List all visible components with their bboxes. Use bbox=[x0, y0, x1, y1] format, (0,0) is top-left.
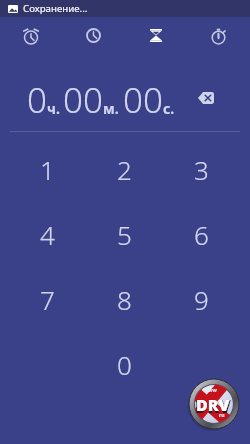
button[interactable]: 5 bbox=[86, 202, 163, 267]
button[interactable]: Backspace bbox=[194, 88, 218, 108]
button[interactable]: 0 bbox=[86, 332, 163, 397]
staticText: 6 bbox=[194, 217, 209, 252]
staticText: м. bbox=[103, 99, 119, 118]
button[interactable]: 7 bbox=[9, 267, 86, 332]
staticText: 3 bbox=[194, 152, 209, 187]
staticText: 00 bbox=[123, 76, 163, 124]
staticText: 0 bbox=[117, 347, 132, 382]
button[interactable]: 8 bbox=[86, 267, 163, 332]
button[interactable]: 9 bbox=[163, 267, 240, 332]
staticText: 00 bbox=[63, 76, 103, 124]
staticText: 7 bbox=[40, 282, 55, 317]
staticText: DRV bbox=[196, 394, 230, 416]
button[interactable]: Alarm bbox=[0, 17, 62, 56]
button[interactable]: Stopwatch bbox=[187, 17, 250, 56]
staticText: 8 bbox=[117, 282, 132, 317]
button[interactable]: 1 bbox=[9, 137, 86, 202]
button[interactable]: 6 bbox=[163, 202, 240, 267]
staticText: 9 bbox=[194, 282, 209, 317]
staticText: www bbox=[204, 387, 217, 394]
staticText: 0 bbox=[27, 76, 47, 124]
button[interactable]: World clock bbox=[62, 17, 124, 56]
button[interactable]: Timer bbox=[124, 17, 187, 56]
button[interactable]: 3 bbox=[163, 137, 240, 202]
staticText: Сохранение... bbox=[23, 2, 88, 15]
staticText: DRV bbox=[195, 395, 231, 418]
staticText: 1 bbox=[40, 152, 55, 187]
staticText: 5 bbox=[117, 217, 132, 252]
staticText: 4 bbox=[40, 217, 55, 252]
button[interactable]: 2 bbox=[86, 137, 163, 202]
staticText: ru bbox=[219, 412, 225, 419]
staticText: ч. bbox=[47, 99, 60, 118]
staticText: с. bbox=[163, 99, 175, 118]
button[interactable]: 4 bbox=[9, 202, 86, 267]
staticText: 2 bbox=[117, 152, 132, 187]
